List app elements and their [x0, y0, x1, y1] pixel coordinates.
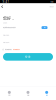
staticText: 您好，	[3, 16, 15, 20]
staticText: 首页	[8, 95, 10, 96]
staticText: 未注册手机号验证后自动登录	[3, 27, 16, 28]
button[interactable]: 《用户服务协议》	[12, 49, 20, 50]
staticText: 登录	[25, 55, 31, 58]
button[interactable]: 我的	[37, 87, 56, 100]
staticText: 9:41	[2, 0, 9, 3]
staticText: 消息	[27, 95, 29, 96]
button[interactable]: 首页	[0, 87, 19, 100]
staticText: 请输入验证码	[3, 42, 9, 43]
staticText: 获取	[43, 27, 45, 28]
staticText: 《用户服务协议》	[12, 49, 20, 50]
staticText: 密码登录	[49, 6, 53, 7]
button[interactable]: 消息	[19, 87, 37, 100]
button[interactable]: 密码登录	[49, 5, 53, 8]
button[interactable]: 获取	[41, 26, 47, 29]
button[interactable]: Back	[0, 5, 5, 8]
staticText: 请输入手机号	[3, 34, 9, 36]
staticText: 我的	[46, 95, 48, 96]
staticText: ▪▪ ▮	[50, 1, 53, 2]
button[interactable]: 登录	[3, 53, 53, 61]
staticText: 我已阅读并同意	[5, 49, 12, 50]
